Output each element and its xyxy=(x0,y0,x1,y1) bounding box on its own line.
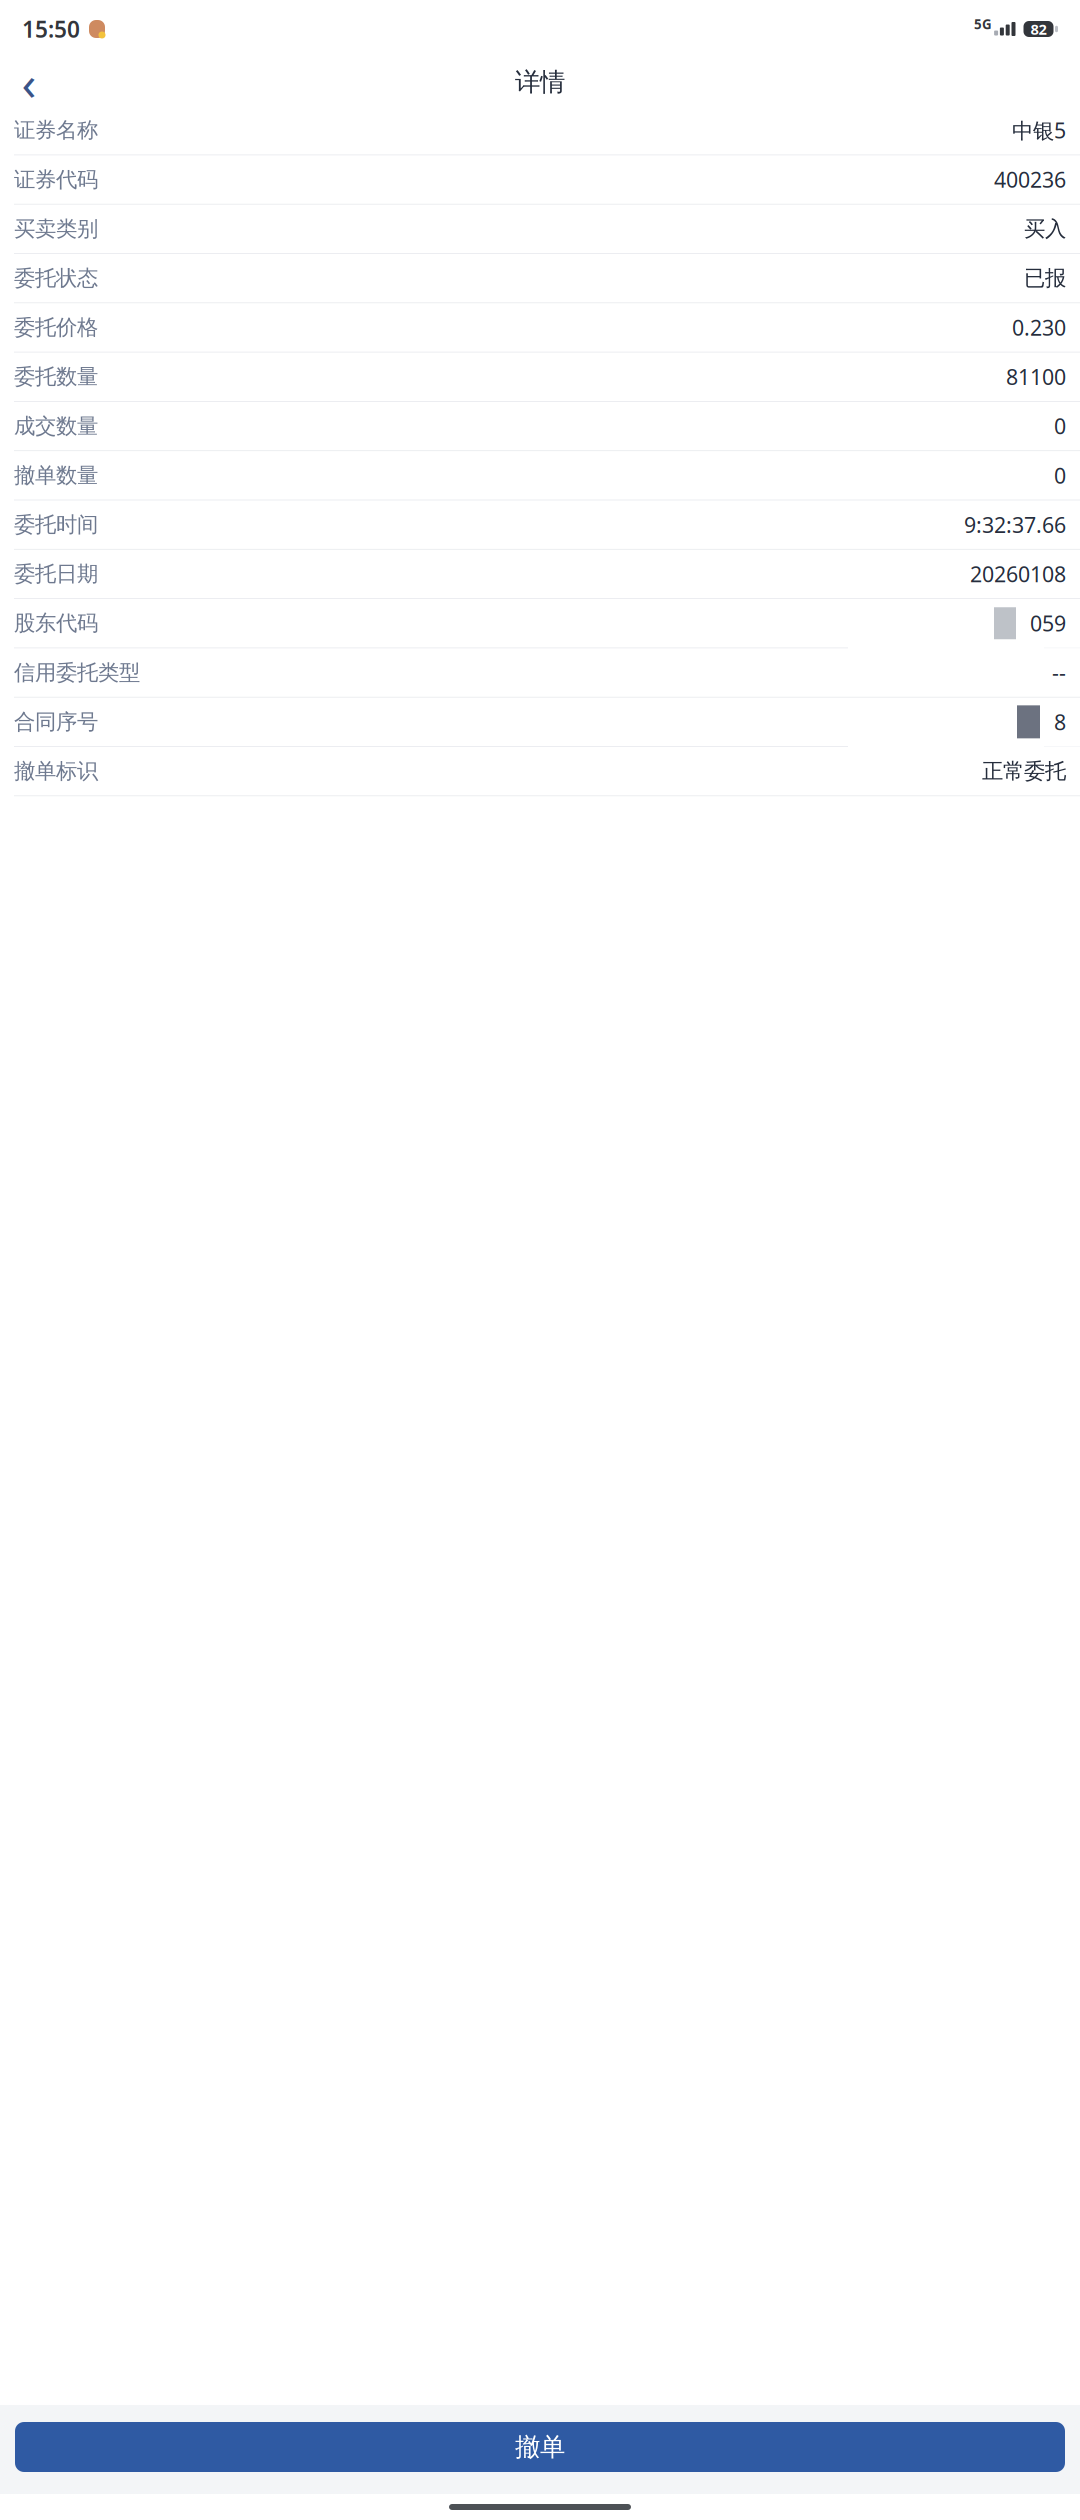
staticText: 委托时间 xyxy=(14,511,98,538)
staticText: 059 xyxy=(1030,609,1066,637)
staticText: 400236 xyxy=(994,165,1066,194)
staticText: 8 xyxy=(1054,708,1066,736)
staticText: 5G xyxy=(974,15,992,33)
staticText: 委托日期 xyxy=(14,561,98,587)
staticText: 81100 xyxy=(1006,363,1066,391)
staticText: 详情 xyxy=(515,66,565,97)
button[interactable]: 撤单 xyxy=(15,2422,1065,2472)
staticText: 撤单 xyxy=(515,2431,565,2462)
staticText: 82 xyxy=(1030,19,1046,39)
staticText: 委托状态 xyxy=(14,265,98,291)
staticText: 买卖类别 xyxy=(14,216,98,242)
staticText: 股东代码 xyxy=(14,610,98,636)
staticText: 撤单标识 xyxy=(14,758,98,784)
staticText: 证券名称 xyxy=(14,117,98,143)
staticText: 9:32:37.66 xyxy=(964,510,1066,539)
staticText: 信用委托类型 xyxy=(14,659,140,686)
staticText: 买入 xyxy=(1024,216,1066,242)
staticText: 撤单数量 xyxy=(14,462,98,488)
staticText: 正常委托 xyxy=(982,758,1066,784)
staticText: 证券代码 xyxy=(14,166,98,193)
staticText: 0 xyxy=(1054,461,1066,489)
staticText: 成交数量 xyxy=(14,413,98,439)
staticText: 中银5 xyxy=(1012,116,1066,144)
staticText: 0 xyxy=(1054,412,1066,440)
staticText: -- xyxy=(1052,658,1066,687)
button[interactable]: 返回 xyxy=(4,59,54,105)
staticText: 20260108 xyxy=(970,560,1066,588)
staticText: 委托价格 xyxy=(14,314,98,340)
staticText: 已报 xyxy=(1024,265,1066,291)
staticText: 0.230 xyxy=(1012,313,1066,342)
staticText: 委托数量 xyxy=(14,364,98,390)
staticText: 15:50 xyxy=(22,14,80,44)
staticText: ‹ xyxy=(21,50,36,114)
staticText: 合同序号 xyxy=(14,709,98,735)
